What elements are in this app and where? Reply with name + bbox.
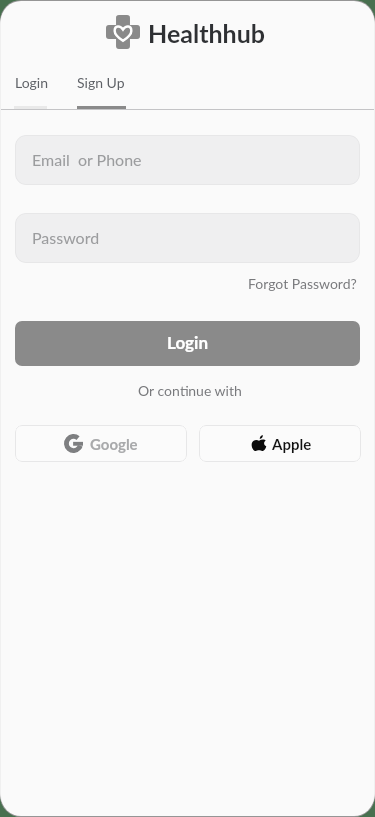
staticText: Password	[32, 228, 100, 247]
button[interactable]: Email or Phone	[15, 135, 360, 185]
button[interactable]: Password	[15, 213, 360, 263]
staticText: Apple	[272, 435, 312, 453]
staticText: Forgot Password?	[248, 275, 357, 292]
staticText: Email or Phone	[32, 150, 142, 169]
button[interactable]: Sign Up	[63, 65, 139, 111]
staticText: Healthhub	[148, 18, 265, 48]
button[interactable]: Login	[1, 65, 63, 111]
staticText: Sign Up	[77, 74, 125, 91]
button[interactable]: Apple	[199, 425, 361, 462]
staticText: Login	[167, 332, 208, 352]
button[interactable]: Forgot Password?	[248, 275, 374, 292]
staticText: Login	[15, 74, 49, 91]
button[interactable]: Login	[15, 321, 360, 366]
button[interactable]: Google	[15, 425, 187, 462]
staticText: Google	[90, 435, 138, 453]
staticText: Or continue with	[138, 382, 242, 399]
